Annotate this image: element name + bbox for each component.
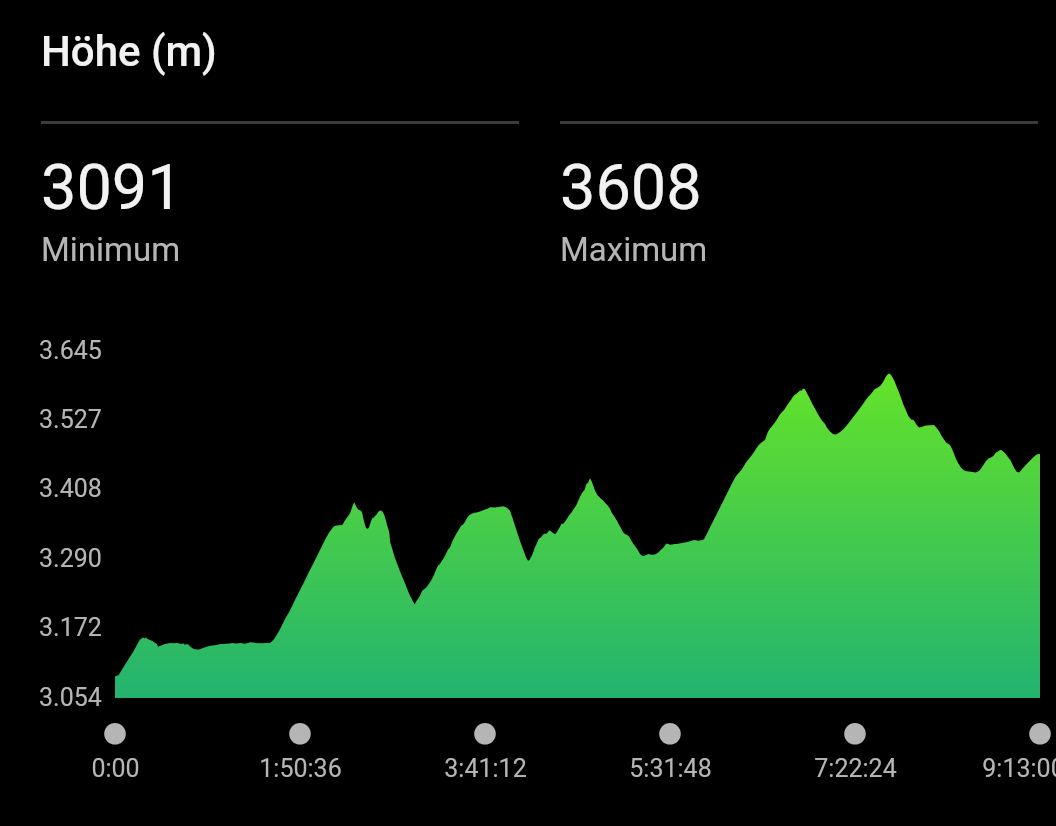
staticText: 3.054 [39, 683, 102, 712]
staticText: 7:22:24 [814, 754, 897, 783]
staticText: Höhe (m) [41, 27, 217, 76]
staticText: 3.408 [39, 474, 102, 503]
staticText: 5:31:48 [629, 754, 712, 783]
button[interactable]: Elevation profile chart [115, 320, 1040, 698]
staticText: 3.290 [39, 544, 102, 573]
staticText: 3:41:12 [444, 754, 527, 783]
staticText: 0:00 [91, 754, 140, 783]
button[interactable]: 3608 [560, 121, 1038, 269]
staticText: 9:13:00 [982, 754, 1056, 783]
button[interactable]: 3091 [41, 121, 519, 269]
staticText: Minimum [41, 230, 181, 269]
staticText: 3.172 [39, 613, 102, 642]
staticText: 3.645 [39, 336, 102, 365]
staticText: Maximum [560, 230, 708, 269]
staticText: 3091 [41, 151, 183, 225]
button[interactable]: Höhe (m) [41, 27, 217, 76]
staticText: 1:50:36 [259, 754, 342, 783]
staticText: 3608 [560, 151, 702, 225]
staticText: 3.527 [39, 405, 102, 434]
